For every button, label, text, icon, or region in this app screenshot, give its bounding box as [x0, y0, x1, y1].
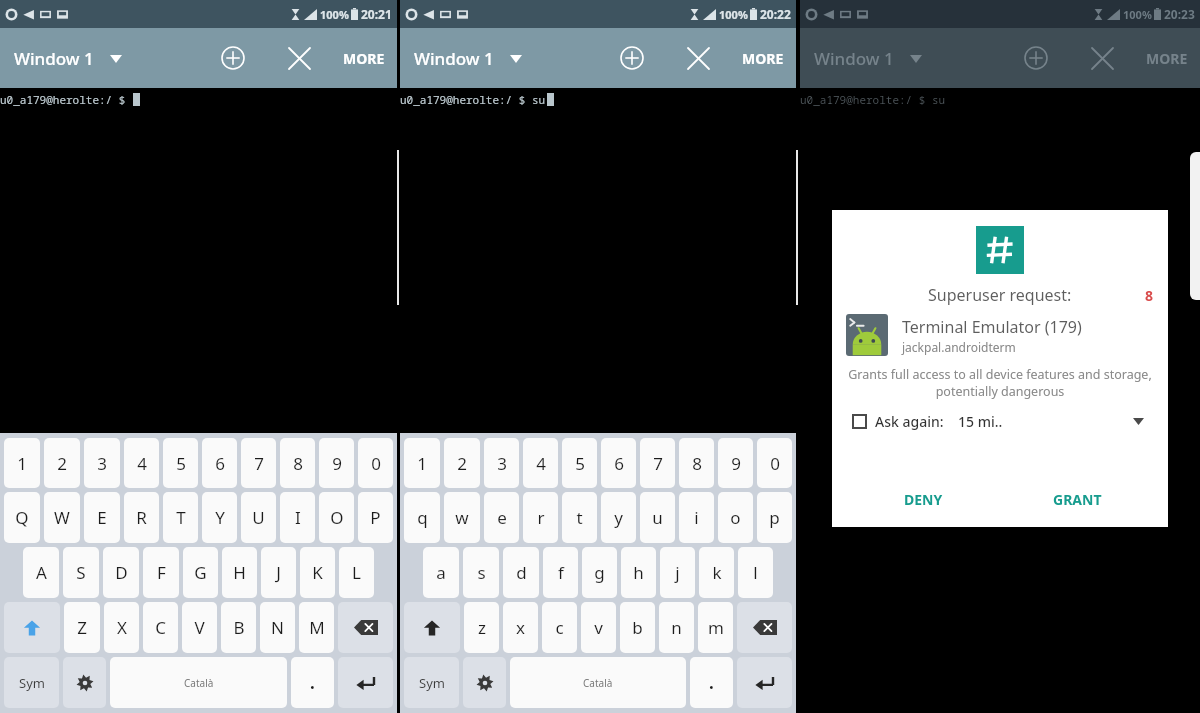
button[interactable]: M [299, 602, 334, 653]
button[interactable]: f [543, 547, 578, 598]
button[interactable]: g [582, 547, 617, 598]
button[interactable]: MORE [730, 37, 796, 80]
button[interactable]: New window [1014, 36, 1058, 80]
button[interactable]: x [503, 602, 538, 653]
button[interactable]: MORE [331, 37, 397, 80]
button[interactable]: 9 [718, 438, 753, 488]
button[interactable]: T [163, 492, 198, 543]
button[interactable]: Q [4, 492, 40, 543]
button[interactable]: Shift [4, 602, 60, 653]
button[interactable]: Close window [277, 36, 321, 80]
button[interactable]: 8 [679, 438, 714, 488]
button[interactable]: H [222, 547, 257, 598]
button[interactable]: s [463, 547, 499, 598]
button[interactable]: p [757, 492, 792, 543]
button[interactable]: Backspace [338, 602, 393, 653]
button[interactable]: 8 [280, 438, 315, 488]
button[interactable]: D [103, 547, 139, 598]
button[interactable]: Close window [1080, 36, 1124, 80]
button[interactable]: Window 1 [400, 39, 530, 78]
button[interactable]: Català [510, 657, 686, 708]
button[interactable]: r [523, 492, 558, 543]
button[interactable]: Close window [676, 36, 720, 80]
button[interactable]: Window 1 [0, 39, 130, 78]
button[interactable]: 7 [640, 438, 675, 488]
button[interactable]: 7 [241, 438, 276, 488]
button[interactable]: h [621, 547, 656, 598]
button[interactable]: 2 [44, 438, 80, 488]
button[interactable]: Window 1 [800, 39, 930, 78]
button[interactable]: K [300, 547, 335, 598]
button[interactable]: z [464, 602, 499, 653]
button[interactable]: Y [202, 492, 237, 543]
button[interactable]: t [562, 492, 597, 543]
button[interactable]: v [581, 602, 616, 653]
button[interactable]: V [182, 602, 217, 653]
button[interactable]: Català [110, 657, 287, 708]
button[interactable]: 0 [358, 438, 393, 488]
button[interactable]: c [542, 602, 577, 653]
button[interactable]: l [738, 547, 773, 598]
button[interactable]: m [698, 602, 733, 653]
button[interactable]: o [718, 492, 753, 543]
button[interactable]: O [319, 492, 354, 543]
button[interactable]: 6 [202, 438, 237, 488]
button[interactable]: Sym [4, 657, 59, 708]
button[interactable]: i [679, 492, 714, 543]
button[interactable]: Enter [737, 657, 792, 708]
button[interactable]: 15 mi.. [958, 412, 1154, 431]
button[interactable]: G [183, 547, 218, 598]
button[interactable]: Settings [63, 657, 106, 708]
button[interactable]: 0 [757, 438, 792, 488]
button[interactable]: X [104, 602, 139, 653]
button[interactable]: 4 [124, 438, 159, 488]
button[interactable]: 3 [84, 438, 120, 488]
button[interactable]: 1 [4, 438, 40, 488]
button[interactable]: DENY [890, 482, 957, 517]
button[interactable]: Shift [404, 602, 460, 653]
button[interactable]: 5 [562, 438, 597, 488]
button[interactable]: j [660, 547, 695, 598]
button[interactable]: New window [610, 36, 654, 80]
button[interactable]: y [601, 492, 636, 543]
button[interactable]: 2 [444, 438, 480, 488]
button[interactable]: Settings [463, 657, 506, 708]
button[interactable]: 4 [523, 438, 558, 488]
button[interactable]: b [620, 602, 655, 653]
button[interactable]: B [221, 602, 256, 653]
button[interactable]: Backspace [737, 602, 792, 653]
button[interactable]: C [143, 602, 178, 653]
button[interactable]: e [484, 492, 519, 543]
button[interactable]: 9 [319, 438, 354, 488]
button[interactable]: L [339, 547, 374, 598]
button[interactable]: J [261, 547, 296, 598]
button[interactable]: 6 [601, 438, 636, 488]
button[interactable]: 5 [163, 438, 198, 488]
button[interactable]: . [690, 657, 733, 708]
button[interactable]: A [23, 547, 59, 598]
button[interactable]: E [84, 492, 120, 543]
button[interactable]: u [640, 492, 675, 543]
button[interactable]: k [699, 547, 734, 598]
button[interactable]: d [503, 547, 539, 598]
button[interactable]: 3 [484, 438, 519, 488]
button[interactable]: R [124, 492, 159, 543]
button[interactable]: Sym [404, 657, 459, 708]
button[interactable]: N [260, 602, 295, 653]
button[interactable]: 1 [404, 438, 440, 488]
button[interactable]: F [143, 547, 179, 598]
button[interactable]: S [63, 547, 99, 598]
button[interactable]: I [280, 492, 315, 543]
button[interactable]: Ask again: [852, 412, 944, 431]
button[interactable]: GRANT [1039, 482, 1116, 517]
button[interactable]: W [44, 492, 80, 543]
button[interactable]: Z [64, 602, 100, 653]
button[interactable]: a [423, 547, 459, 598]
button[interactable]: Enter [338, 657, 393, 708]
button[interactable]: . [291, 657, 334, 708]
button[interactable]: U [241, 492, 276, 543]
button[interactable]: P [358, 492, 393, 543]
button[interactable]: MORE [1134, 37, 1200, 80]
button[interactable]: n [659, 602, 694, 653]
button[interactable]: w [444, 492, 480, 543]
